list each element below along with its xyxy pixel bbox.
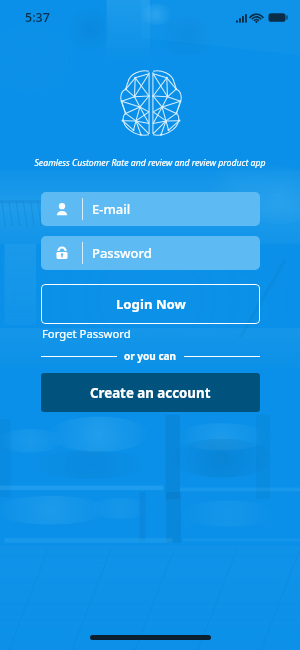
button[interactable]: Login Now — [41, 284, 260, 324]
button[interactable]: Password — [41, 236, 260, 270]
staticText: E-mail — [92, 200, 131, 218]
staticText: Password — [92, 244, 152, 262]
staticText: Login Now — [116, 295, 186, 313]
button[interactable]: E-mail — [41, 192, 260, 226]
staticText: Forget Password — [42, 326, 131, 341]
staticText: or you can — [124, 349, 177, 363]
staticText: 5:37 — [25, 9, 50, 26]
button[interactable]: Forget Password — [42, 326, 131, 341]
button[interactable]: Create an account — [41, 373, 260, 412]
staticText: Create an account — [90, 384, 211, 402]
staticText: Seamless Customer Rate and review and re… — [0, 157, 300, 169]
